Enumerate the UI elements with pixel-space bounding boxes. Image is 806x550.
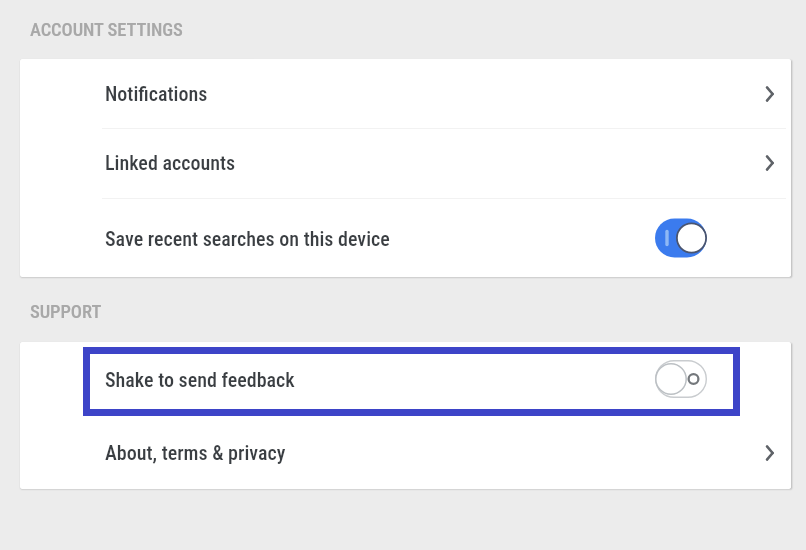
button[interactable]: Open Notifications	[752, 82, 776, 106]
button[interactable]: Save recent searches on this device, on	[655, 218, 707, 258]
button[interactable]: Open About, terms & privacy	[752, 441, 776, 465]
staticText: About, terms & privacy	[105, 441, 286, 464]
staticText: Save recent searches on this device	[105, 227, 390, 250]
button[interactable]: About, terms & privacy	[20, 416, 791, 489]
button[interactable]: Save recent searches on this device	[20, 198, 791, 277]
staticText: Notifications	[105, 82, 208, 105]
button[interactable]: Open Linked accounts	[752, 151, 776, 175]
button[interactable]: Shake to send feedback, off	[655, 359, 707, 399]
staticText: SUPPORT	[30, 301, 102, 323]
staticText: Shake to send feedback	[105, 368, 295, 391]
button[interactable]: Linked accounts	[20, 128, 791, 197]
button[interactable]: Shake to send feedback	[20, 342, 791, 416]
button[interactable]: Notifications	[20, 59, 791, 128]
staticText: ACCOUNT SETTINGS	[30, 19, 183, 41]
staticText: Linked accounts	[105, 151, 236, 174]
